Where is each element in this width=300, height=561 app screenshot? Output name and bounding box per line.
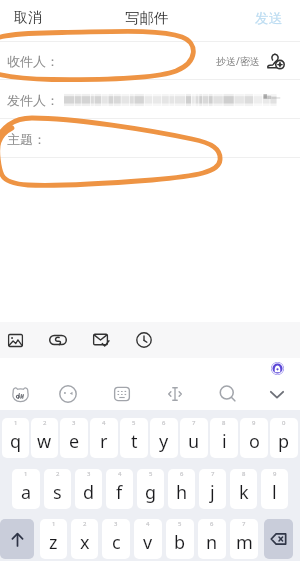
staticText: 2 xyxy=(56,470,60,478)
staticText: 7 xyxy=(211,470,215,478)
staticText: 0 xyxy=(282,419,286,427)
staticText: h xyxy=(176,480,188,505)
staticText: q xyxy=(10,429,22,454)
staticText: 发件人： xyxy=(7,92,59,108)
staticText: r xyxy=(100,429,108,454)
button[interactable]: d xyxy=(75,469,102,509)
staticText: 6 xyxy=(210,520,214,528)
button[interactable]: x xyxy=(71,519,98,559)
staticText: y xyxy=(159,429,169,454)
staticText: 写邮件 xyxy=(125,9,169,27)
button[interactable]: 光标移动 xyxy=(162,381,188,407)
button[interactable]: r xyxy=(90,418,118,458)
staticText: 7 xyxy=(242,520,246,528)
button[interactable]: Backspace xyxy=(264,519,293,559)
button[interactable]: 发件人： xyxy=(0,80,300,119)
staticText: 2 xyxy=(43,419,47,427)
staticText: u xyxy=(188,429,200,454)
button[interactable]: a xyxy=(12,469,40,509)
button[interactable]: 键盘 xyxy=(109,381,135,407)
staticText: x xyxy=(80,530,90,555)
staticText: 6 xyxy=(162,419,166,427)
staticText: l xyxy=(272,480,277,505)
button[interactable]: 输入法设置 xyxy=(7,381,33,407)
staticText: e xyxy=(69,429,80,454)
staticText: n xyxy=(206,530,218,555)
staticText: 取消 xyxy=(14,9,42,27)
staticText: j xyxy=(210,480,215,505)
staticText: p xyxy=(278,429,290,454)
staticText: t xyxy=(131,429,138,454)
button[interactable]: 收起键盘 xyxy=(264,381,290,407)
button[interactable]: 语音输入 xyxy=(48,330,68,350)
button[interactable]: m xyxy=(230,519,258,559)
staticText: s xyxy=(53,480,62,505)
button[interactable]: c xyxy=(102,519,130,559)
staticText: 3 xyxy=(87,470,91,478)
button[interactable]: j xyxy=(199,469,226,509)
button[interactable]: u xyxy=(180,418,208,458)
button[interactable]: AI 助手 xyxy=(271,362,284,375)
button[interactable]: l xyxy=(261,469,288,509)
staticText: c xyxy=(112,530,121,555)
button[interactable]: g xyxy=(137,469,164,509)
button[interactable]: n xyxy=(198,519,226,559)
staticText: i xyxy=(222,429,227,454)
staticText: 3 xyxy=(72,419,76,427)
staticText: w xyxy=(37,429,52,454)
button[interactable]: b xyxy=(166,519,194,559)
button[interactable]: p xyxy=(270,418,298,458)
staticText: k xyxy=(239,480,249,505)
staticText: 1 xyxy=(52,520,56,528)
button[interactable]: f xyxy=(106,469,133,509)
button[interactable]: 搜索 xyxy=(215,381,241,407)
button[interactable]: Shift xyxy=(0,519,34,559)
staticText: 抄送/密送 xyxy=(216,54,260,68)
other: 添加联系人 xyxy=(266,51,286,71)
button[interactable]: o xyxy=(240,418,268,458)
button[interactable]: 发送 xyxy=(249,4,288,33)
staticText: 8 xyxy=(222,419,226,427)
button[interactable]: 定时发送 xyxy=(135,331,153,349)
staticText: 6 xyxy=(180,470,184,478)
staticText: a xyxy=(21,480,32,505)
staticText: 1 xyxy=(24,470,28,478)
button[interactable]: k xyxy=(230,469,257,509)
button[interactable]: w xyxy=(31,418,58,458)
staticText: 2 xyxy=(83,520,87,528)
button[interactable]: 邮件回执 xyxy=(92,331,110,349)
button[interactable]: 取消 xyxy=(6,3,50,33)
button[interactable]: v xyxy=(134,519,162,559)
staticText: d xyxy=(83,480,95,505)
staticText: f xyxy=(116,480,123,505)
button[interactable]: 抄送/密送 xyxy=(216,51,286,71)
staticText: b xyxy=(174,530,186,555)
staticText: 收件人： xyxy=(7,53,59,69)
staticText: 主题： xyxy=(7,131,46,147)
button[interactable]: 收件人： xyxy=(0,42,300,80)
button[interactable]: y xyxy=(150,418,178,458)
button[interactable]: z xyxy=(40,519,67,559)
button[interactable]: e xyxy=(60,418,88,458)
staticText: 5 xyxy=(178,520,182,528)
staticText: 发送 xyxy=(255,10,282,27)
button[interactable]: 插入图片 xyxy=(6,331,24,349)
staticText: 3 xyxy=(114,520,118,528)
staticText: z xyxy=(49,530,58,555)
button[interactable]: s xyxy=(44,469,71,509)
staticText: 4 xyxy=(146,520,150,528)
staticText: 4 xyxy=(102,419,106,427)
staticText: 7 xyxy=(192,419,196,427)
button[interactable]: 主题： xyxy=(0,119,300,158)
staticText: g xyxy=(145,480,157,505)
staticText: m xyxy=(236,530,253,555)
staticText: 1 xyxy=(14,419,18,427)
staticText: 9 xyxy=(252,419,256,427)
staticText: v xyxy=(143,530,153,555)
button[interactable]: h xyxy=(168,469,195,509)
staticText: 4 xyxy=(118,470,122,478)
button[interactable]: 表情 xyxy=(55,381,81,407)
button[interactable]: i xyxy=(210,418,238,458)
button[interactable]: t xyxy=(120,418,148,458)
button[interactable]: q xyxy=(2,418,29,458)
